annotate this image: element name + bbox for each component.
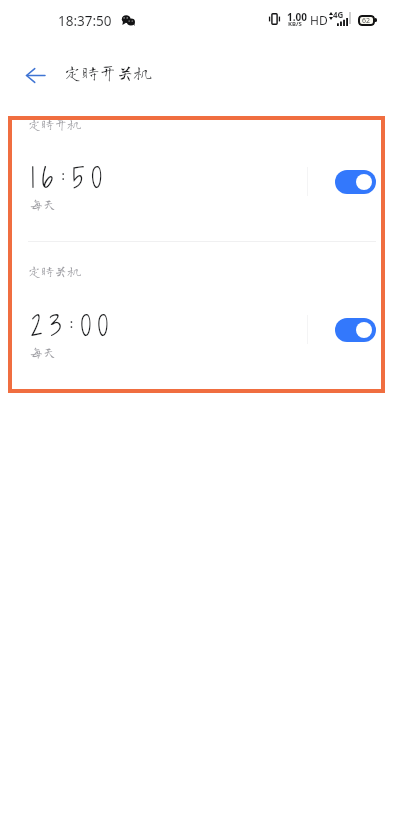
- staticText: 定时开关机: [64, 64, 152, 81]
- staticText: 4G: [333, 9, 344, 20]
- staticText: 18:37:50: [58, 12, 112, 30]
- staticText: 每天: [30, 346, 57, 359]
- staticText: 1.00: [287, 10, 307, 24]
- staticText: 每天: [30, 198, 57, 211]
- staticText: 定时开机: [28, 117, 81, 130]
- button[interactable]: Toggle schedule: [335, 170, 376, 194]
- staticText: HD: [310, 12, 328, 28]
- staticText: KB/S: [288, 20, 302, 28]
- staticText: 16:50: [31, 159, 109, 197]
- other: WeChat: [121, 14, 135, 26]
- staticText: 62: [362, 16, 371, 26]
- button[interactable]: Toggle schedule: [335, 318, 376, 342]
- button[interactable]: Back: [19, 59, 51, 91]
- staticText: 定时关机: [28, 264, 81, 277]
- staticText: 23:00: [31, 307, 116, 345]
